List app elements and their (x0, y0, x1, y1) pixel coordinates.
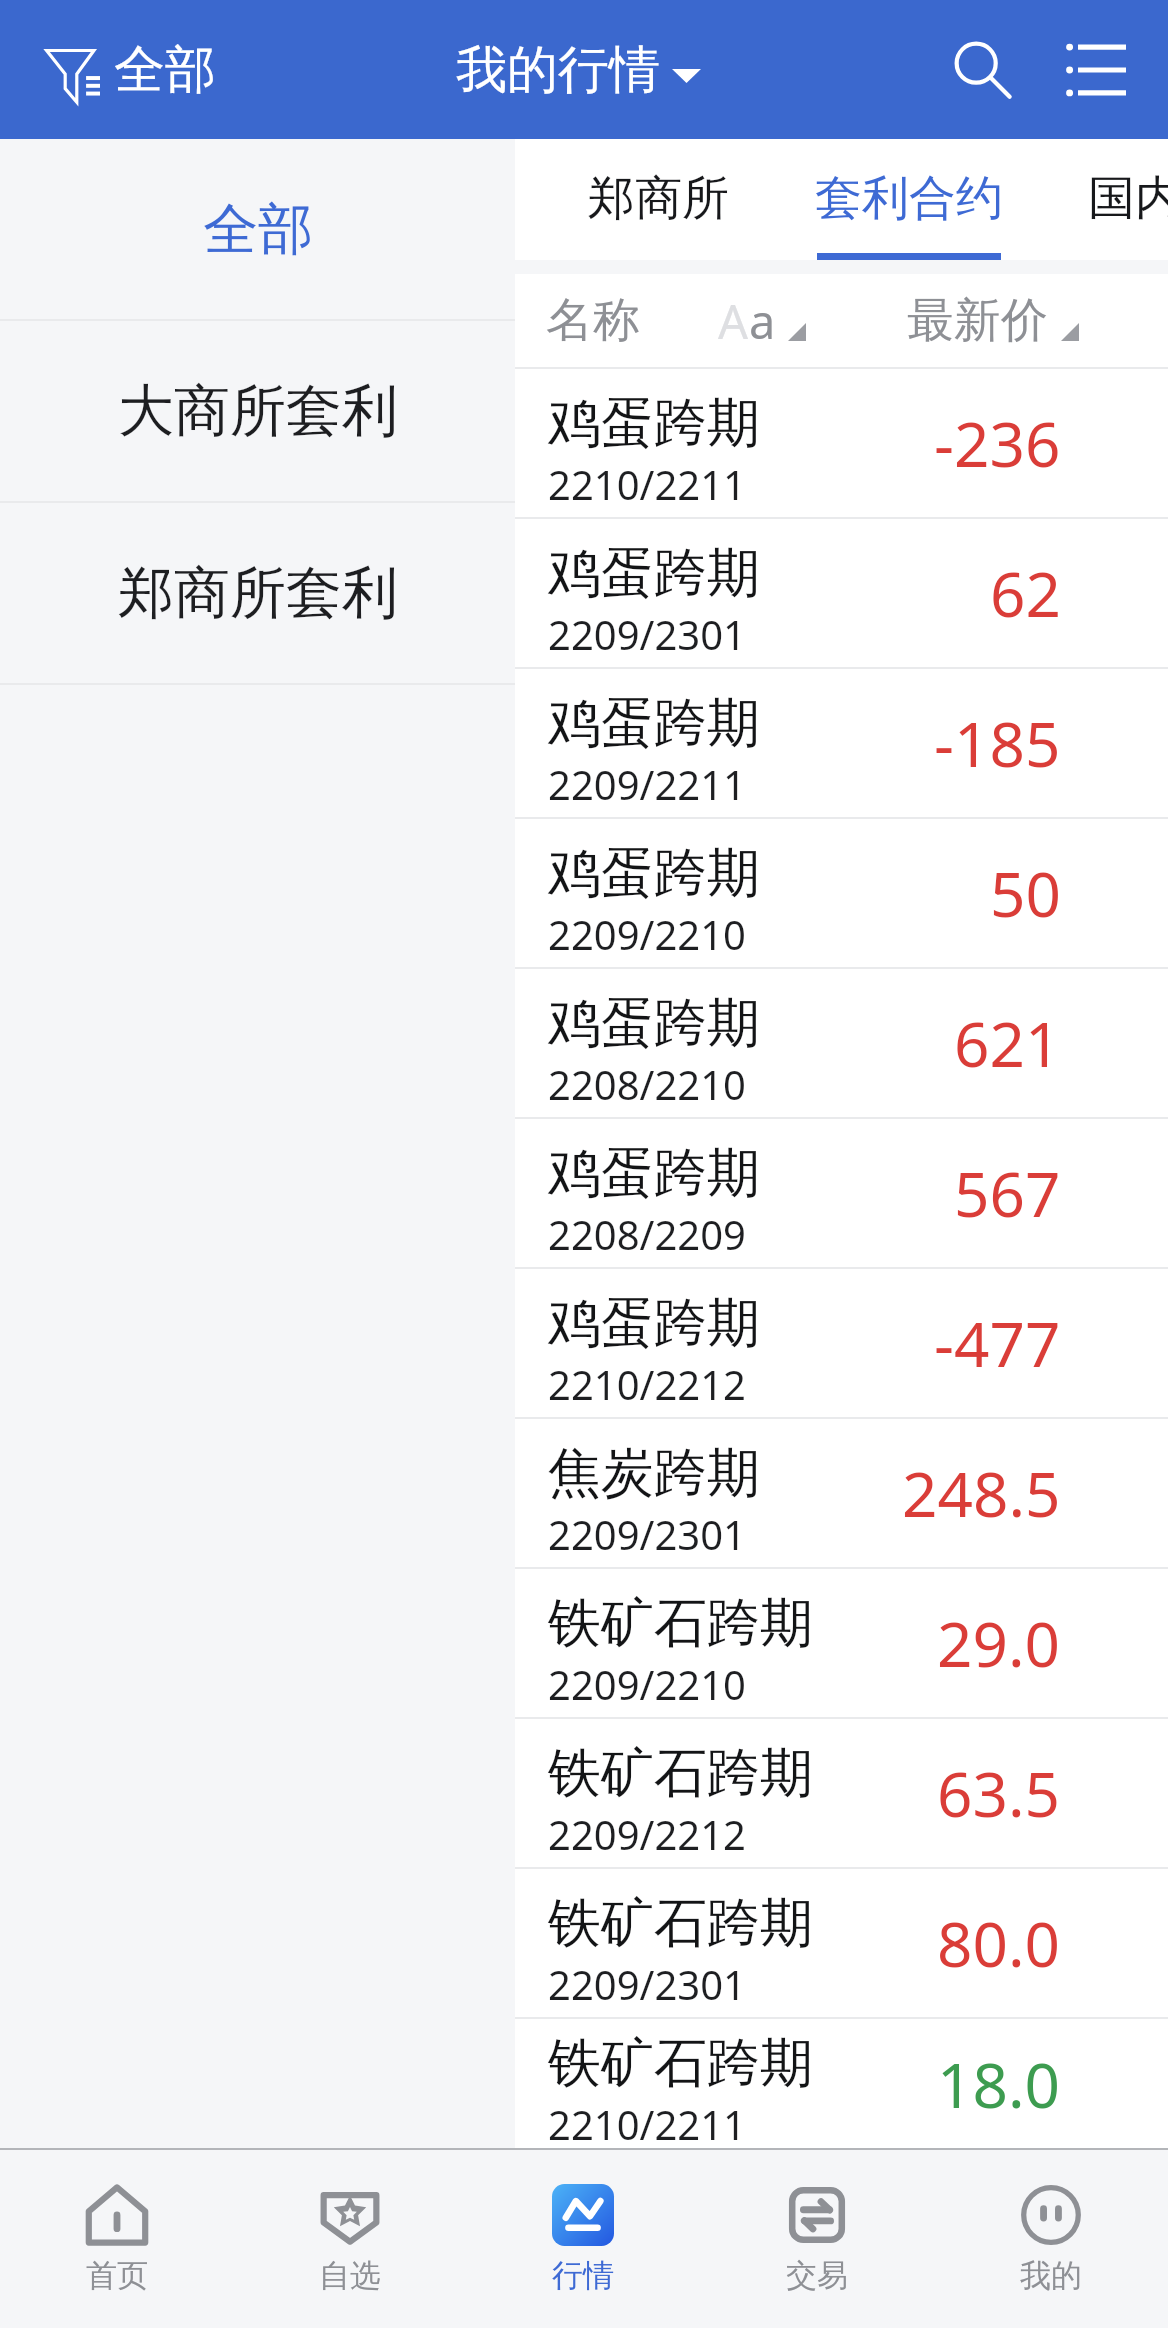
staticText: A (718, 289, 749, 353)
button[interactable]: 鸡蛋跨期 (515, 1269, 1168, 1419)
button[interactable]: 我的 (934, 2150, 1168, 2328)
staticText: 2208/2209 (548, 1207, 746, 1261)
button[interactable]: 最新价 (907, 274, 1079, 367)
staticText: -236 (934, 401, 1061, 485)
staticText: 全部 (114, 38, 216, 102)
staticText: 18.0 (937, 2042, 1061, 2126)
staticText: 248.5 (902, 1451, 1061, 1535)
staticText: 621 (954, 1001, 1061, 1085)
staticText: 铁矿石跨期 (548, 2030, 813, 2097)
button[interactable]: 国内 (1088, 139, 1168, 260)
staticText: 郑商所套利 (118, 558, 398, 629)
staticText: 自选 (319, 2256, 381, 2295)
button[interactable]: 鸡蛋跨期 (515, 1119, 1168, 1269)
button[interactable]: 大商所套利 (0, 321, 515, 501)
staticText: 鸡蛋跨期 (548, 1290, 760, 1357)
staticText: 2208/2210 (548, 1057, 746, 1111)
staticText: 套利合约 (815, 169, 1003, 228)
staticText: 我的 (1020, 2256, 1082, 2295)
staticText: 国内 (1088, 169, 1168, 228)
button[interactable]: 鸡蛋跨期 (515, 669, 1168, 819)
staticText: 我的行情 (456, 38, 660, 102)
staticText: 全部 (203, 195, 313, 264)
button[interactable]: 我的行情 (456, 38, 701, 102)
button[interactable]: 套利合约 (815, 139, 1003, 260)
button[interactable]: 自选 (233, 2150, 466, 2328)
staticText: 首页 (86, 2256, 148, 2295)
staticText: 2209/2210 (548, 907, 746, 961)
button[interactable]: 铁矿石跨期 (515, 1719, 1168, 1869)
staticText: 鸡蛋跨期 (548, 840, 760, 907)
button[interactable]: 全部 (42, 24, 216, 116)
button[interactable]: 鸡蛋跨期 (515, 519, 1168, 669)
staticText: 最新价 (907, 291, 1048, 350)
staticText: 63.5 (937, 1751, 1061, 1835)
staticText: 80.0 (937, 1901, 1061, 1985)
staticText: 铁矿石跨期 (548, 1890, 813, 1957)
staticText: 29.0 (937, 1601, 1061, 1685)
button[interactable]: 首页 (0, 2150, 233, 2328)
button[interactable]: 交易 (700, 2150, 934, 2328)
staticText: 鸡蛋跨期 (548, 540, 760, 607)
button[interactable]: 铁矿石跨期 (515, 1569, 1168, 1719)
button[interactable]: Menu (1041, 15, 1151, 125)
staticText: 大商所套利 (118, 376, 398, 447)
button[interactable]: 鸡蛋跨期 (515, 819, 1168, 969)
staticText: 鸡蛋跨期 (548, 690, 760, 757)
staticText: 鸡蛋跨期 (548, 1140, 760, 1207)
staticText: 2209/2301 (548, 607, 746, 661)
button[interactable]: 铁矿石跨期 (515, 1869, 1168, 2019)
button[interactable]: 鸡蛋跨期 (515, 369, 1168, 519)
button[interactable]: 行情 (466, 2150, 700, 2328)
button[interactable]: 鸡蛋跨期 (515, 969, 1168, 1119)
staticText: 郑商所 (588, 169, 729, 228)
staticText: -185 (934, 701, 1061, 785)
button[interactable]: 全部 (0, 139, 515, 319)
staticText: 焦炭跨期 (548, 1440, 760, 1507)
staticText: 2210/2211 (548, 457, 746, 511)
staticText: 62 (990, 551, 1061, 635)
staticText: 鸡蛋跨期 (548, 990, 760, 1057)
staticText: 鸡蛋跨期 (548, 390, 760, 457)
staticText: 交易 (786, 2256, 848, 2295)
staticText: 2209/2301 (548, 1957, 746, 2011)
staticText: 50 (990, 851, 1061, 935)
staticText: 铁矿石跨期 (548, 1740, 813, 1807)
staticText: a (749, 289, 776, 353)
staticText: 2209/2212 (548, 1807, 746, 1861)
staticText: 2209/2210 (548, 1657, 746, 1711)
button[interactable]: 焦炭跨期 (515, 1419, 1168, 1569)
staticText: 567 (954, 1151, 1061, 1235)
staticText: 2210/2212 (548, 1357, 746, 1411)
button[interactable]: 郑商所 (588, 139, 729, 260)
staticText: 2209/2301 (548, 1507, 746, 1561)
staticText: 2209/2211 (548, 757, 746, 811)
button[interactable]: A (718, 274, 806, 367)
button[interactable]: Search (928, 15, 1038, 125)
button[interactable]: 郑商所套利 (0, 503, 515, 683)
staticText: 2210/2211 (548, 2097, 746, 2151)
staticText: 行情 (552, 2256, 614, 2295)
staticText: 铁矿石跨期 (548, 1590, 813, 1657)
button[interactable]: 铁矿石跨期 (515, 2019, 1168, 2148)
staticText: 名称 (546, 291, 640, 350)
staticText: -477 (934, 1301, 1061, 1385)
